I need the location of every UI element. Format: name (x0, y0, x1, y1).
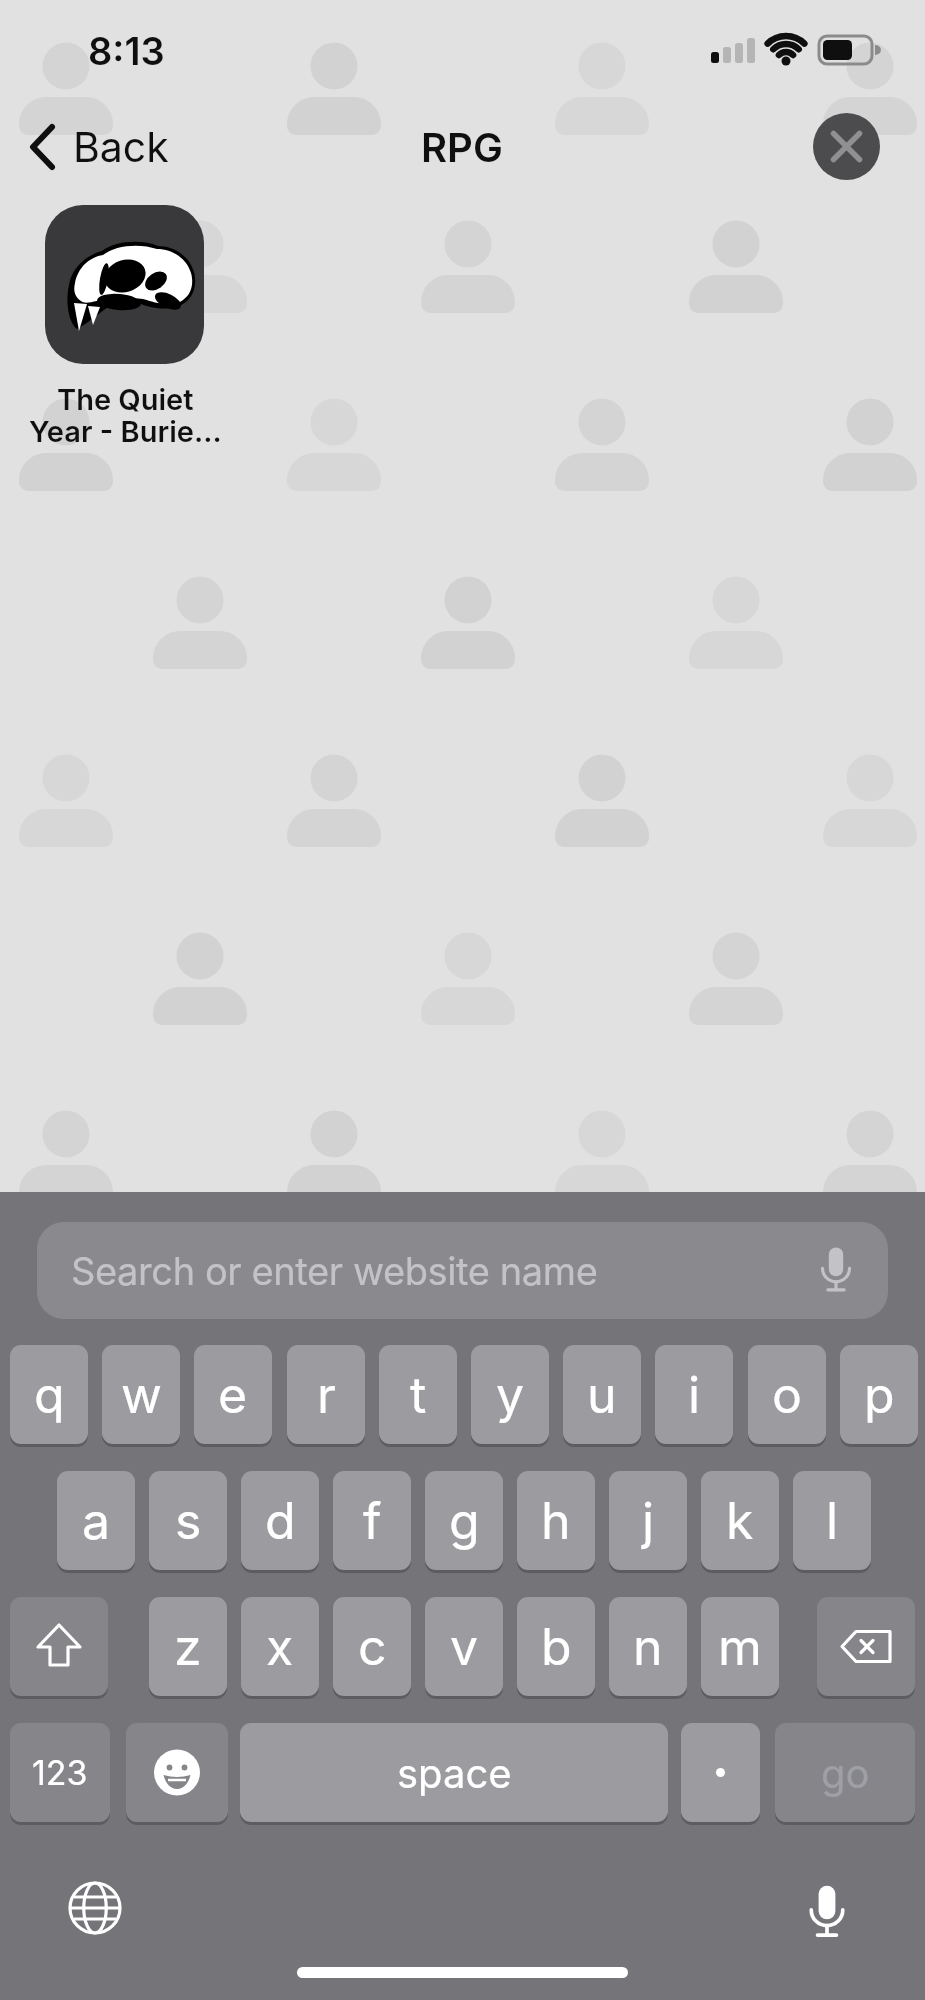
staticText: b (541, 1617, 572, 1677)
staticText: Back (73, 122, 169, 172)
button[interactable]: y (471, 1345, 549, 1444)
button[interactable]: Search or enter website name (37, 1222, 888, 1319)
button[interactable]: r (287, 1345, 365, 1444)
button[interactable]: b (517, 1597, 595, 1696)
staticText: i (688, 1365, 701, 1425)
button[interactable] (45, 205, 204, 364)
staticText: 123 (32, 1752, 88, 1793)
button[interactable]: u (563, 1345, 641, 1444)
staticText: r (317, 1365, 336, 1425)
staticText: t (410, 1365, 427, 1425)
staticText: z (174, 1617, 202, 1677)
button[interactable]: t (379, 1345, 457, 1444)
staticText: go (821, 1749, 870, 1797)
staticText: Year - Burie... (29, 414, 222, 448)
staticText: h (541, 1491, 571, 1551)
button[interactable]: h (517, 1471, 595, 1570)
button[interactable] (813, 113, 880, 180)
button[interactable]: j (609, 1471, 687, 1570)
button[interactable]: e (194, 1345, 272, 1444)
staticText: k (726, 1491, 754, 1551)
staticText: u (587, 1365, 617, 1425)
staticText: d (265, 1491, 296, 1551)
button[interactable]: o (748, 1345, 826, 1444)
staticText: RPG (421, 123, 503, 171)
staticText: space (397, 1749, 512, 1797)
staticText: f (363, 1491, 382, 1551)
staticText: Search or enter website name (71, 1248, 598, 1294)
staticText: c (358, 1617, 387, 1677)
button[interactable]: v (425, 1597, 503, 1696)
button[interactable]: a (57, 1471, 135, 1570)
button[interactable]: f (333, 1471, 411, 1570)
button[interactable]: c (333, 1597, 411, 1696)
staticText: m (718, 1617, 762, 1677)
button[interactable]: g (425, 1471, 503, 1570)
staticText: 8:13 (88, 28, 165, 72)
button[interactable]: s (149, 1471, 227, 1570)
staticText: v (450, 1617, 479, 1677)
button[interactable]: q (10, 1345, 88, 1444)
staticText: s (175, 1491, 202, 1551)
button[interactable] (10, 1597, 108, 1696)
button[interactable]: x (241, 1597, 319, 1696)
staticText: w (121, 1365, 162, 1425)
button[interactable]: k (701, 1471, 779, 1570)
staticText: a (82, 1491, 111, 1551)
staticText: q (34, 1365, 65, 1425)
button[interactable]: n (609, 1597, 687, 1696)
button[interactable]: d (241, 1471, 319, 1570)
button[interactable]: m (701, 1597, 779, 1696)
button[interactable]: 123 (10, 1723, 110, 1822)
button[interactable]: z (149, 1597, 227, 1696)
button[interactable] (681, 1723, 760, 1822)
button[interactable]: w (102, 1345, 180, 1444)
button[interactable]: go (775, 1723, 915, 1822)
button[interactable]: i (655, 1345, 733, 1444)
staticText: p (864, 1365, 895, 1425)
button[interactable]: Back (73, 120, 233, 174)
staticText: n (633, 1617, 663, 1677)
staticText: o (772, 1365, 802, 1425)
staticText: x (266, 1617, 294, 1677)
staticText: The Quiet (57, 382, 194, 416)
staticText: y (496, 1365, 525, 1425)
staticText: g (449, 1491, 480, 1551)
button[interactable]: l (793, 1471, 871, 1570)
staticText: e (218, 1365, 248, 1425)
button[interactable] (126, 1723, 228, 1822)
staticText: j (642, 1491, 655, 1551)
button[interactable]: p (840, 1345, 918, 1444)
staticText: l (826, 1491, 839, 1551)
button[interactable] (817, 1597, 915, 1696)
button[interactable]: space (240, 1723, 668, 1822)
